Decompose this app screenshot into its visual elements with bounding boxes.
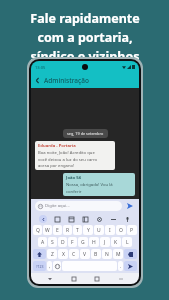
staticText: S <box>51 239 54 246</box>
button[interactable]: Recents <box>92 274 101 283</box>
button[interactable]: Home <box>69 274 78 283</box>
staticText: com a portaria, <box>37 29 133 46</box>
button[interactable]: H <box>89 237 99 247</box>
button[interactable]: Emoji <box>53 261 61 271</box>
button[interactable]: W <box>43 225 52 235</box>
button[interactable]: Keyboard tool 0 <box>53 215 61 223</box>
staticText: C <box>72 251 76 258</box>
staticText: seg, 19 de setembro <box>67 131 104 136</box>
button[interactable]: Send message <box>124 261 137 271</box>
staticText: síndico e vizinhos <box>30 48 140 65</box>
staticText: ?123 <box>36 264 44 269</box>
button[interactable]: M <box>113 249 123 259</box>
staticText: . <box>120 263 122 269</box>
button[interactable]: B <box>91 249 101 259</box>
staticText: O <box>119 227 123 234</box>
button[interactable]: E <box>53 225 62 235</box>
button[interactable]: J <box>100 237 110 247</box>
staticText: V <box>83 251 87 258</box>
button[interactable]: Eduarda - Portaria <box>35 141 115 170</box>
button[interactable]: Keyboard tool 5 <box>123 215 131 223</box>
staticText: L <box>126 239 129 246</box>
staticText: Digite aqui... <box>45 203 70 209</box>
button[interactable]: Back <box>31 74 44 87</box>
button[interactable]: R <box>63 225 72 235</box>
staticText: G <box>81 239 85 246</box>
staticText: P <box>130 227 134 234</box>
staticText: Administração <box>44 76 89 85</box>
button[interactable]: Backspace <box>124 249 137 259</box>
staticText: N <box>105 251 109 258</box>
staticText: Y <box>87 227 90 234</box>
button[interactable]: Q <box>33 225 42 235</box>
staticText: , <box>49 263 51 269</box>
staticText: Eduarda - Portaria <box>38 143 76 149</box>
button[interactable]: ?123 <box>33 261 46 271</box>
staticText: T <box>76 227 79 234</box>
button[interactable]: X <box>58 249 68 259</box>
staticText: 13:05 <box>35 65 46 70</box>
staticText: H <box>92 239 96 246</box>
button[interactable]: Send <box>125 201 135 211</box>
button[interactable]: S <box>48 237 57 247</box>
staticText: Z <box>51 251 54 258</box>
staticText: F <box>71 239 74 246</box>
button[interactable]: . <box>118 261 123 271</box>
staticText: Boa noite, João! Acredito que você deixo… <box>38 150 98 168</box>
staticText: X <box>62 251 65 258</box>
staticText: Nossa, obrigado! Vou lá conferir <box>66 182 113 194</box>
button[interactable]: U <box>94 225 104 235</box>
button[interactable]: K <box>111 237 121 247</box>
staticText: B <box>94 251 98 258</box>
button[interactable]: L <box>122 237 132 247</box>
button[interactable]: F <box>68 237 77 247</box>
button[interactable]: Back <box>45 274 54 283</box>
staticText: Q <box>36 227 40 234</box>
staticText: W <box>45 227 50 234</box>
button[interactable]: Keyboard tool 2 <box>81 215 89 223</box>
button[interactable]: C <box>69 249 79 259</box>
button[interactable]: G <box>78 237 88 247</box>
staticText: J <box>104 239 106 246</box>
button[interactable]: N <box>102 249 112 259</box>
button[interactable]: I <box>105 225 115 235</box>
button[interactable]: D <box>58 237 67 247</box>
button[interactable]: Keyboard tool 4 <box>109 215 117 223</box>
button[interactable]: O <box>116 225 126 235</box>
button[interactable]: P <box>127 225 137 235</box>
button[interactable]: Keyboard tool 1 <box>67 215 75 223</box>
button[interactable]: Expand <box>39 215 47 223</box>
button[interactable]: João 54 <box>63 173 135 196</box>
button[interactable]: Keyboard tool 3 <box>95 215 103 223</box>
button[interactable]: Z <box>47 249 57 259</box>
staticText: K <box>114 239 118 246</box>
staticText: M <box>116 251 121 258</box>
staticText: R <box>66 227 70 234</box>
button[interactable]: A <box>38 237 47 247</box>
button[interactable]: V <box>80 249 90 259</box>
staticText: D <box>61 239 65 246</box>
staticText: U <box>97 227 101 234</box>
staticText: A <box>41 239 45 246</box>
staticText: Fale rapidamente <box>30 10 140 27</box>
staticText: I <box>109 227 111 234</box>
button[interactable]: Shift <box>33 249 46 259</box>
button[interactable]: , <box>47 261 52 271</box>
button[interactable]: T <box>73 225 82 235</box>
staticText: E <box>56 227 59 234</box>
button[interactable]: Digite aqui... <box>35 201 122 211</box>
button[interactable]: Keyboard hide <box>116 274 125 283</box>
button[interactable]: Y <box>83 225 93 235</box>
staticText: João 54 <box>66 175 82 181</box>
